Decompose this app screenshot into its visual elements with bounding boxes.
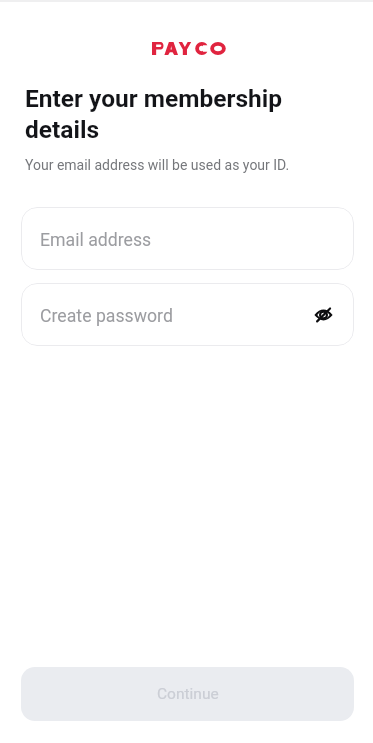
staticText: Enter your membership details: [25, 84, 303, 144]
button[interactable]: Continue: [21, 667, 354, 721]
staticText: Email address: [40, 230, 337, 251]
staticText: Create password: [40, 306, 309, 327]
staticText: Your email address will be used as your …: [25, 157, 290, 173]
button[interactable]: Email address: [21, 207, 354, 270]
staticText: Continue: [157, 685, 219, 703]
button[interactable]: Show password: [309, 301, 337, 329]
button[interactable]: Create password: [21, 283, 354, 346]
